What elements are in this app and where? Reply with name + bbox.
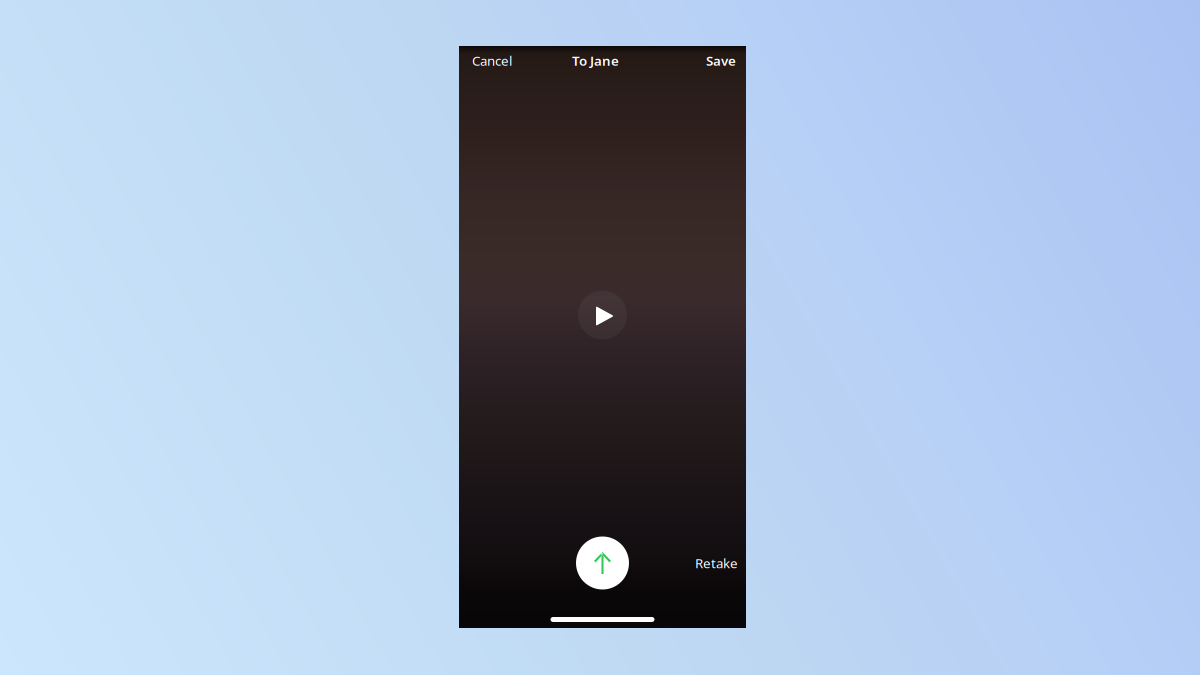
button[interactable]: Retake bbox=[689, 549, 743, 577]
staticText: To Jane bbox=[572, 52, 619, 69]
button[interactable]: Send bbox=[569, 530, 636, 596]
button[interactable]: Play video bbox=[568, 282, 637, 348]
staticText: Save bbox=[706, 52, 736, 69]
staticText: Cancel bbox=[472, 52, 512, 69]
button[interactable]: Cancel bbox=[462, 46, 521, 74]
staticText: Retake bbox=[695, 554, 738, 572]
button[interactable]: Save bbox=[700, 46, 746, 75]
